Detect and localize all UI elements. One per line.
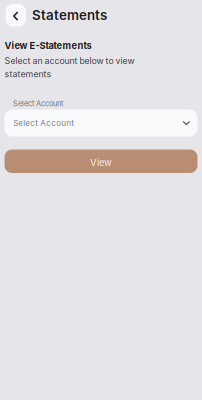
button[interactable]: View: [4, 149, 197, 173]
button[interactable]: Back: [5, 4, 26, 26]
button[interactable]: Select Account: [4, 109, 197, 136]
staticText: Select Account: [13, 99, 63, 108]
staticText: Select an account below to view statemen…: [4, 55, 134, 79]
staticText: Statements: [32, 7, 107, 23]
staticText: View E-Statements: [4, 40, 91, 51]
staticText: Select Account: [13, 118, 74, 128]
staticText: View: [90, 157, 112, 168]
